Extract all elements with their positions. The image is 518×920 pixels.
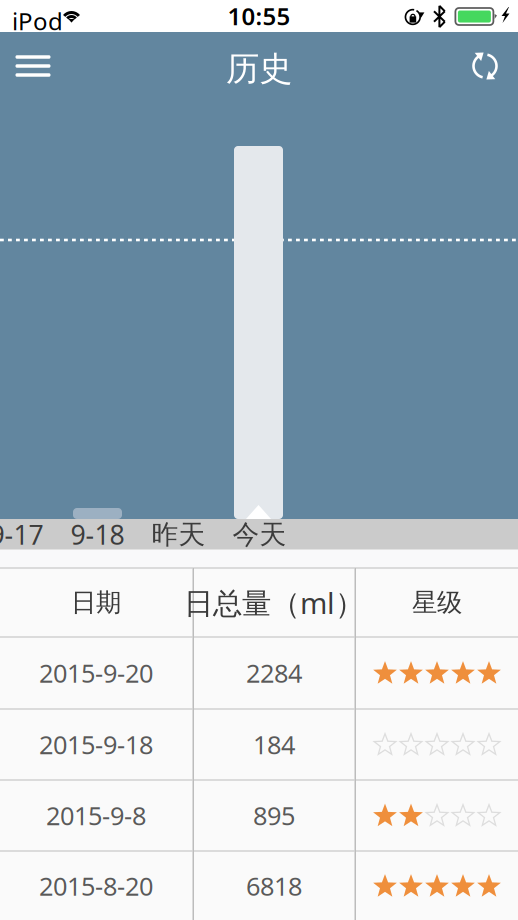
staticText: 2015-9-20 (39, 656, 153, 690)
staticText: 10:55 (227, 0, 290, 32)
staticText: 昨天 (151, 518, 205, 551)
staticText: 9-17 (0, 517, 43, 552)
staticText: 6818 (246, 869, 302, 903)
staticText: 历史 (226, 48, 292, 89)
staticText: 895 (253, 799, 295, 832)
staticText: 2284 (246, 656, 302, 690)
button[interactable]: Refresh (459, 34, 511, 98)
staticText: 2015-8-20 (39, 869, 153, 903)
staticText: 2015-9-18 (39, 728, 153, 761)
staticText: 日期 (71, 587, 121, 618)
button[interactable]: Menu (7, 34, 59, 98)
staticText: 星级 (412, 587, 462, 618)
staticText: 2015-9-8 (46, 799, 146, 832)
staticText: iPod (12, 5, 63, 37)
staticText: 9-18 (70, 517, 124, 552)
staticText: 日总量（ml） (184, 583, 364, 622)
staticText: 184 (253, 728, 295, 761)
staticText: 今天 (232, 518, 286, 551)
